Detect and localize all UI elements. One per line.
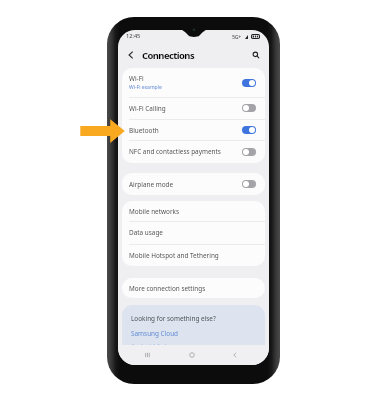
button[interactable]: Airplane mode [122, 173, 265, 195]
staticText: 5G+ [232, 33, 242, 40]
button[interactable]: Mobile Hotspot and Tethering [122, 244, 265, 266]
staticText: Mobile Hotspot and Tethering [129, 251, 219, 260]
staticText: 12:45 [126, 32, 141, 40]
button[interactable]: Back [227, 345, 243, 365]
button[interactable]: Home [184, 345, 200, 365]
button[interactable]: NFC and contactless payments [122, 140, 265, 163]
staticText: Bluetooth [129, 126, 159, 135]
staticText: Mobile networks [129, 207, 180, 216]
button[interactable] [242, 104, 256, 112]
button[interactable] [242, 180, 256, 188]
staticText: Airplane mode [129, 180, 174, 189]
button[interactable] [242, 79, 256, 87]
button[interactable] [242, 148, 256, 156]
staticText: NFC and contactless payments [129, 147, 221, 156]
button[interactable]: Mobile networks [122, 201, 265, 221]
staticText: Connections [142, 49, 195, 62]
button[interactable]: Back [125, 49, 137, 61]
staticText: More connection settings [129, 284, 206, 293]
button[interactable] [242, 126, 256, 134]
button[interactable]: More connection settings [122, 278, 265, 298]
button[interactable]: Wi-Fi [122, 68, 265, 97]
button[interactable]: Recents [139, 345, 155, 365]
button[interactable]: Data usage [122, 221, 265, 243]
button[interactable]: Looking for something else? [122, 305, 265, 357]
button[interactable]: Bluetooth [122, 119, 265, 141]
staticText: Android Auto [131, 342, 171, 351]
button[interactable]: Search [250, 49, 262, 61]
staticText: Looking for something else? [131, 314, 216, 323]
staticText: Data usage [129, 228, 163, 237]
staticText: Wi-Fi Calling [129, 104, 166, 113]
staticText: Wi-Fi [129, 74, 144, 83]
button[interactable]: Wi-Fi Calling [122, 97, 265, 119]
staticText: Wi-Fi example [129, 84, 162, 91]
staticText: Samsung Cloud [131, 329, 179, 338]
